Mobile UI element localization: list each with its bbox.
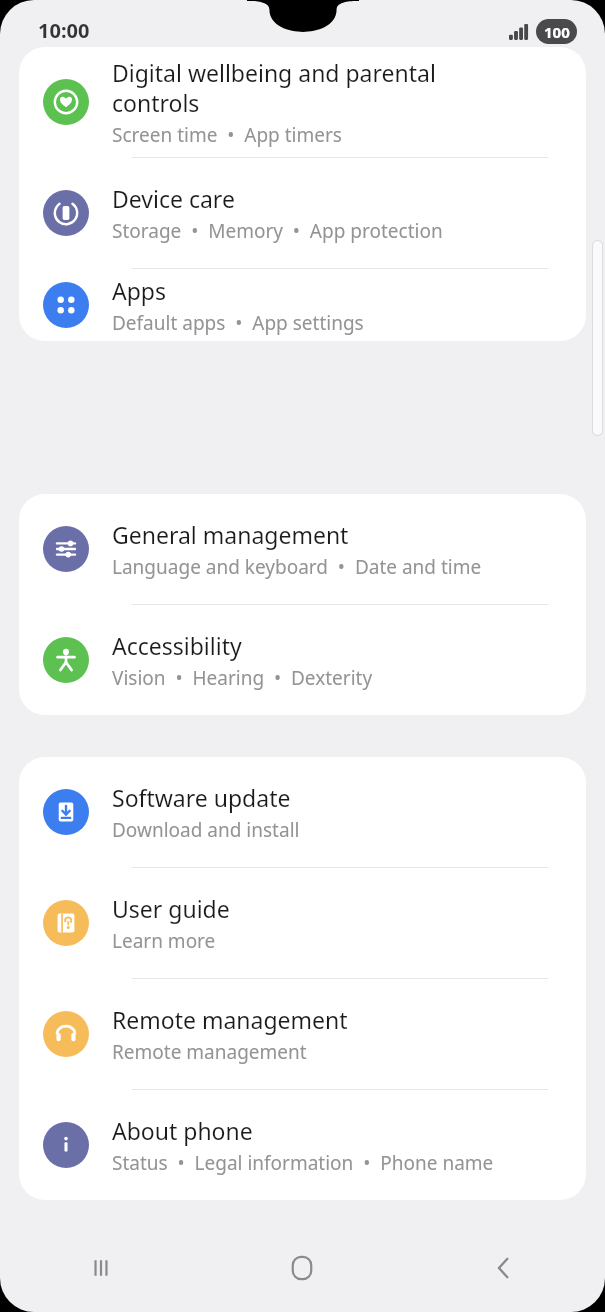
staticText: Learn more <box>112 928 216 954</box>
button[interactable]: Apps <box>19 269 586 341</box>
button[interactable]: General management <box>19 494 586 605</box>
button[interactable]: Device care <box>19 158 586 269</box>
button[interactable]: Home <box>201 1224 403 1312</box>
staticText: Language and keyboard • Date and time <box>112 554 482 580</box>
staticText: User guide <box>112 893 230 924</box>
staticText: Remote management <box>112 1004 348 1035</box>
staticText: 100 <box>544 22 570 42</box>
staticText: About phone <box>112 1115 253 1146</box>
staticText: Remote management <box>112 1039 307 1065</box>
staticText: 10:00 <box>38 17 90 44</box>
staticText: Vision • Hearing • Dexterity <box>112 665 373 691</box>
staticText: Status • Legal information • Phone name <box>112 1150 494 1176</box>
button[interactable]: User guide <box>19 868 586 979</box>
staticText: Download and install <box>112 817 300 843</box>
staticText: Screen time • App timers <box>112 122 342 148</box>
staticText: Accessibility <box>112 630 242 661</box>
staticText: Software update <box>112 782 291 813</box>
staticText: Default apps • App settings <box>112 310 364 336</box>
staticText: General management <box>112 519 349 550</box>
staticText: Storage • Memory • App protection <box>112 218 443 244</box>
button[interactable]: Software update <box>19 757 586 868</box>
button[interactable]: Digital wellbeing and parental controls <box>19 47 586 158</box>
staticText: Device care <box>112 183 235 214</box>
staticText: Settings <box>43 84 166 125</box>
button[interactable]: Back <box>403 1224 605 1312</box>
button[interactable]: Accessibility <box>19 605 586 715</box>
staticText: Apps <box>112 275 167 306</box>
staticText: Digital wellbeing and parental controls <box>112 57 436 118</box>
button[interactable]: Recents <box>0 1224 201 1312</box>
button[interactable]: About phone <box>19 1090 586 1200</box>
button[interactable]: Remote management <box>19 979 586 1090</box>
